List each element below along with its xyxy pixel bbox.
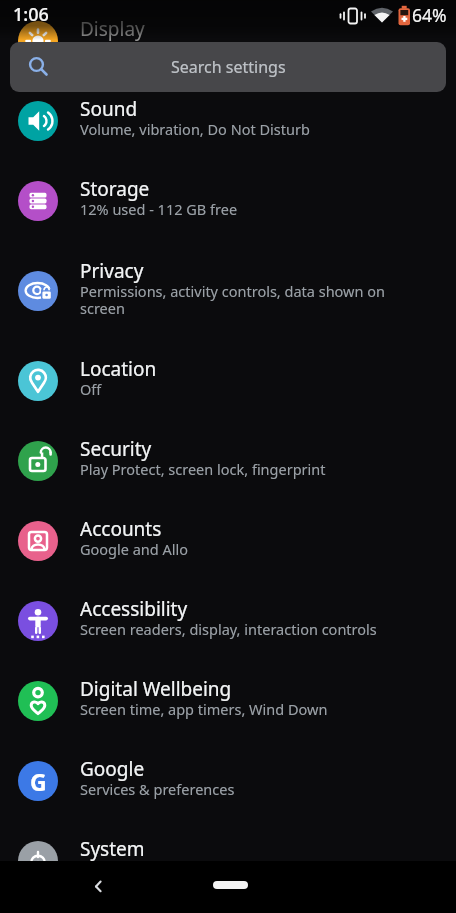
staticText: 64% (412, 3, 447, 27)
staticText: Services & preferences (80, 779, 235, 799)
button[interactable]: Location (0, 341, 456, 421)
button[interactable]: Search settings (10, 42, 446, 92)
button[interactable]: Security (0, 421, 456, 501)
staticText: Screen time, app timers, Wind Down (80, 699, 328, 719)
staticText: Google and Allo (80, 539, 189, 559)
button[interactable]: Display (0, 1, 456, 81)
staticText: Sound (80, 96, 138, 122)
staticText: Accounts (80, 516, 162, 542)
staticText: Privacy (80, 258, 144, 284)
staticText: Digital Wellbeing (80, 676, 232, 702)
button[interactable]: Storage (0, 161, 456, 241)
button[interactable]: Accounts (0, 501, 456, 581)
staticText: Storage (80, 176, 150, 202)
staticText: System (80, 836, 145, 862)
staticText: Wallpaper, sleep, font size (80, 39, 256, 59)
staticText: 12% used - 112 GB free (80, 199, 238, 219)
button[interactable]: Sound (0, 81, 456, 161)
button[interactable]: Accessibility (0, 581, 456, 661)
button[interactable] (213, 881, 248, 889)
button[interactable]: Privacy (0, 241, 456, 341)
staticText: Volume, vibration, Do Not Disturb (80, 119, 310, 139)
button[interactable]: Digital Wellbeing (0, 661, 456, 741)
staticText: Location (80, 356, 157, 382)
staticText: Languages, gestures, time, backup (80, 859, 318, 879)
staticText: Permissions, activity controls, data sho… (80, 281, 385, 318)
staticText: Off (80, 379, 102, 399)
staticText: Search settings (171, 56, 286, 78)
staticText: Play Protect, screen lock, fingerprint (80, 459, 326, 479)
staticText: G (30, 766, 47, 797)
staticText: Google (80, 756, 145, 782)
staticText: Screen readers, display, interaction con… (80, 619, 377, 639)
button[interactable] (80, 868, 116, 904)
staticText: 1:06 (13, 2, 49, 27)
staticText: Display (80, 16, 145, 42)
button[interactable]: System (0, 821, 456, 901)
staticText: Accessibility (80, 596, 188, 622)
button[interactable]: G (0, 741, 456, 821)
staticText: Security (80, 436, 152, 462)
